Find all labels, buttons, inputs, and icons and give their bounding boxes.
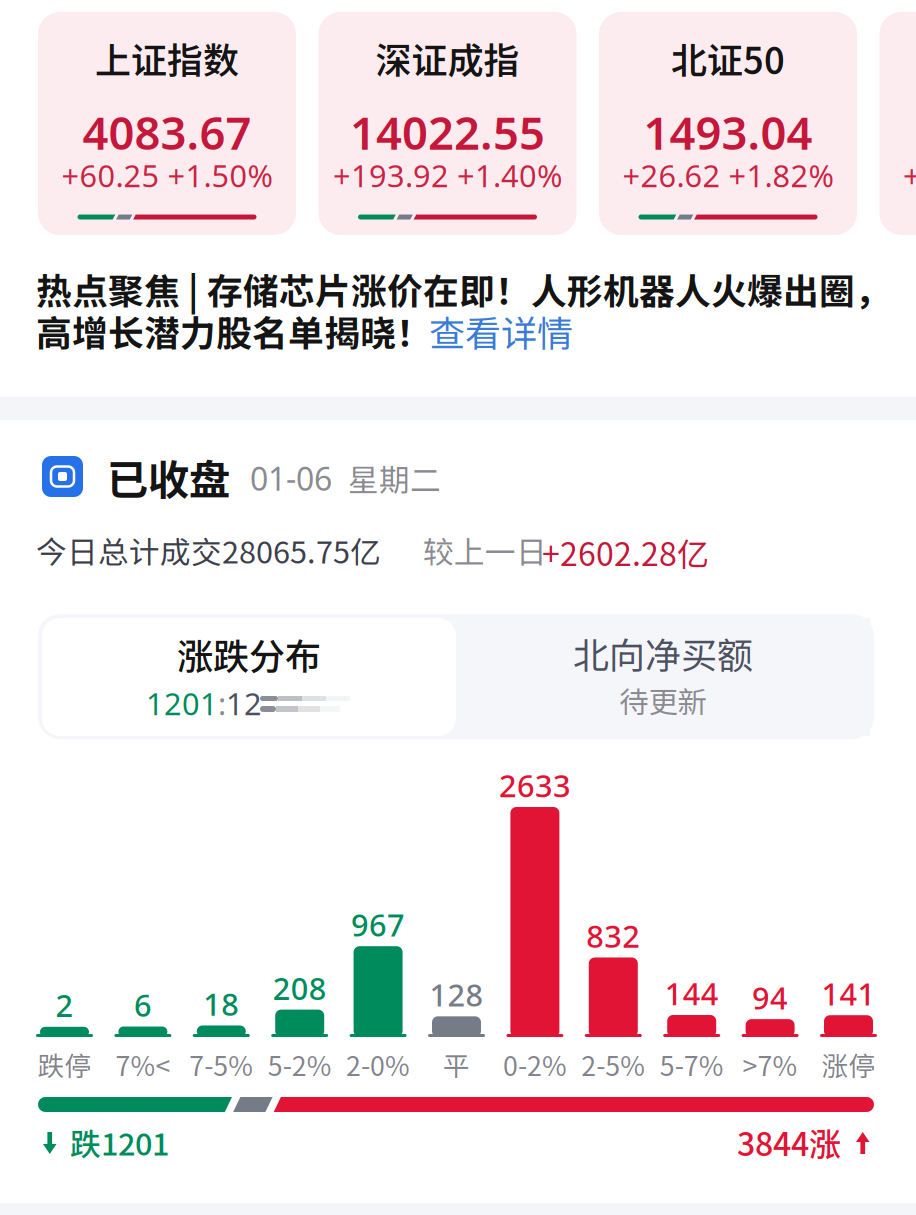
staticText: 3844涨 [737, 1119, 841, 1165]
staticText: 今日总计成交28065.75亿 [36, 528, 381, 572]
button[interactable]: 北向净买额 [456, 618, 870, 736]
staticText: 0-2% [503, 1045, 567, 1084]
staticText: 832 [586, 915, 640, 956]
staticText: 1201 [146, 683, 218, 724]
staticText: 5-2% [268, 1045, 332, 1084]
staticText: +193.92 +1.40% [333, 155, 562, 196]
staticText: 涨停 [821, 1045, 875, 1084]
staticText: 待更新 [619, 679, 706, 721]
staticText: 跌停 [37, 1045, 91, 1084]
staticText: 967 [351, 904, 405, 945]
button[interactable]: 查看详情 [429, 305, 573, 357]
staticText: 2633 [499, 765, 571, 806]
staticText: +60.25 +1.50% [61, 155, 272, 196]
staticText: 01-06 [250, 457, 332, 499]
staticText: >7% [743, 1045, 798, 1084]
button[interactable]: 北证50 [599, 12, 857, 235]
staticText: 较上一日 [423, 528, 547, 572]
staticText: 深证成指 [375, 32, 519, 84]
staticText: 7-5% [189, 1045, 253, 1084]
staticText: 涨跌分布 [177, 628, 321, 680]
staticText: 5-7% [660, 1045, 724, 1084]
staticText: 2-5% [581, 1045, 645, 1084]
staticText: 热点聚焦 | 存储芯片涨价在即！人形机器人火爆出圈， [36, 263, 891, 315]
staticText: 6 [134, 984, 152, 1025]
staticText: 已收盘 [107, 447, 230, 507]
staticText: 高增长潜力股名单揭晓！ [36, 305, 432, 357]
staticText: 1493.04 [643, 102, 812, 162]
button[interactable]: 上证指数 [38, 12, 296, 235]
staticText: 18 [203, 983, 239, 1024]
button[interactable]: 创业板指 [879, 12, 916, 235]
staticText: 14022.55 [350, 102, 545, 162]
staticText: 平 [443, 1045, 470, 1084]
staticText: 12 [226, 683, 262, 724]
button[interactable]: 涨跌分布 [42, 618, 456, 736]
staticText: 跌1201 [70, 1120, 169, 1164]
staticText: 144 [665, 973, 719, 1014]
staticText: 7%< [115, 1045, 170, 1084]
staticText: 星期二 [348, 456, 441, 500]
staticText: 北向净买额 [573, 627, 753, 679]
staticText: +26.62 +1.82% [622, 155, 833, 196]
staticText: 2-0% [346, 1045, 410, 1084]
staticText: 208 [273, 968, 327, 1008]
staticText: 4083.67 [82, 102, 251, 162]
staticText: : [218, 683, 226, 724]
staticText: 北证50 [671, 32, 785, 84]
staticText: 上证指数 [95, 32, 239, 84]
staticText: 141 [821, 973, 875, 1014]
staticText: +2602.28亿 [542, 529, 709, 575]
button[interactable]: 深证成指 [318, 12, 576, 235]
staticText: 128 [429, 974, 483, 1015]
staticText: +54.37 +1.77% [903, 155, 916, 196]
staticText: 94 [752, 977, 788, 1018]
staticText: 查看详情 [429, 305, 573, 357]
staticText: 2 [55, 985, 73, 1025]
